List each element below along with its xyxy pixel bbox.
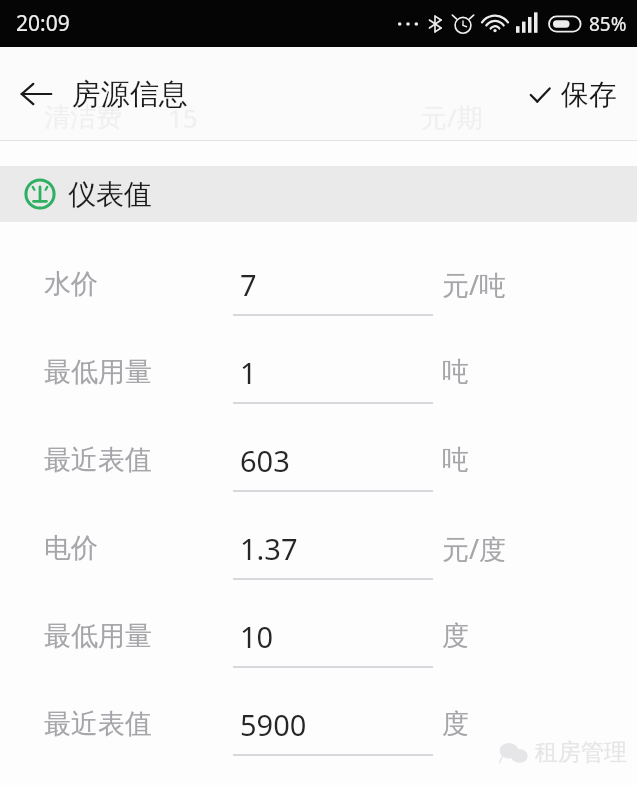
staticText: 租房管理 — [535, 738, 627, 767]
staticText: 元/吨 — [442, 266, 507, 303]
staticText: 吨 — [442, 443, 469, 477]
staticText: 7 — [240, 265, 257, 304]
staticText: 仪表值 — [68, 177, 152, 212]
staticText: 20:09 — [16, 9, 70, 38]
staticText: 15 — [168, 100, 198, 135]
staticText: 元/度 — [442, 530, 507, 567]
button[interactable]: 保存 — [515, 67, 631, 122]
button[interactable]: 水价 — [0, 240, 637, 328]
staticText: 85% — [589, 11, 627, 37]
staticText: 度 — [442, 619, 469, 653]
staticText: 清洁费 — [44, 101, 122, 134]
button[interactable]: 最低用量 — [0, 328, 637, 416]
staticText: 1 — [240, 353, 257, 392]
staticText: 最低用量 — [44, 619, 152, 653]
staticText: 最近表值 — [44, 443, 152, 477]
staticText: 最低用量 — [44, 355, 152, 389]
button[interactable]: 最低用量 — [0, 592, 637, 680]
staticText: 元/期 — [421, 99, 483, 135]
staticText: 水价 — [44, 267, 98, 301]
button[interactable]: 电价 — [0, 504, 637, 592]
staticText: 度 — [442, 707, 469, 741]
staticText: 10 — [240, 617, 274, 656]
staticText: 吨 — [442, 355, 469, 389]
staticText: 最近表值 — [44, 707, 152, 741]
button[interactable]: 最近表值 — [0, 680, 637, 768]
button[interactable]: 最近表值 — [0, 416, 637, 504]
staticText: 房源信息 — [72, 76, 188, 113]
staticText: 电价 — [44, 531, 98, 565]
staticText: 1.37 — [240, 529, 298, 568]
staticText: 603 — [240, 441, 290, 480]
staticText: 保存 — [561, 77, 617, 112]
staticText: 5900 — [240, 705, 307, 744]
button[interactable]: 返回 — [8, 62, 64, 126]
